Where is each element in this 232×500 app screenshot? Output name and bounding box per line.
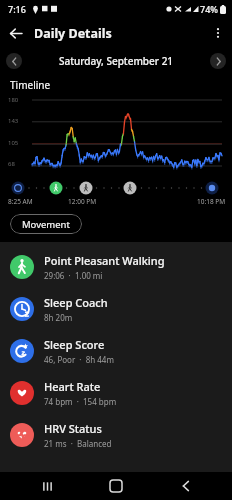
staticText: 74 bpm · 154 bpm <box>44 396 117 407</box>
button[interactable]: Back <box>163 472 209 500</box>
staticText: Movement <box>22 218 70 231</box>
staticText: 10:18 PM <box>197 197 226 206</box>
staticText: 46, Poor · 8h 44m <box>44 354 114 365</box>
button[interactable]: Back <box>0 18 30 48</box>
staticText: Point Pleasant Walking <box>44 253 165 268</box>
button[interactable]: Sleep Coach <box>0 288 232 330</box>
button[interactable]: Recent apps <box>24 472 70 500</box>
button[interactable]: Sleep Score <box>0 330 232 372</box>
staticText: Heart Rate <box>44 379 101 394</box>
button[interactable]: More options <box>204 19 232 47</box>
staticText: 143 <box>8 117 19 125</box>
button[interactable]: Next day <box>210 53 226 69</box>
button[interactable]: Previous day <box>6 53 22 69</box>
staticText: 7:16 <box>8 3 26 15</box>
staticText: 8h 20m <box>44 312 73 323</box>
button[interactable]: Point Pleasant Walking <box>0 246 232 288</box>
staticText: 21 ms · Balanced <box>44 438 112 449</box>
staticText: Saturday, September 21 <box>22 54 210 68</box>
staticText: 68 <box>8 160 15 168</box>
staticText: 105 <box>8 139 19 147</box>
button[interactable]: Home <box>93 472 139 500</box>
staticText: 12:00 PM <box>68 197 97 206</box>
staticText: Sleep Score <box>44 337 105 352</box>
staticText: HRV Status <box>44 421 102 436</box>
staticText: 8:25 AM <box>8 197 33 206</box>
staticText: Daily Details <box>34 25 112 42</box>
staticText: 74% <box>200 3 218 15</box>
staticText: Sleep Coach <box>44 295 108 310</box>
staticText: 180 <box>8 96 19 104</box>
staticText: 29:06 · 1.00 mi <box>44 270 103 281</box>
staticText: Timeline <box>10 78 51 92</box>
button[interactable]: Heart Rate <box>0 372 232 414</box>
button[interactable]: HRV Status <box>0 414 232 456</box>
button[interactable]: Movement <box>10 214 82 234</box>
